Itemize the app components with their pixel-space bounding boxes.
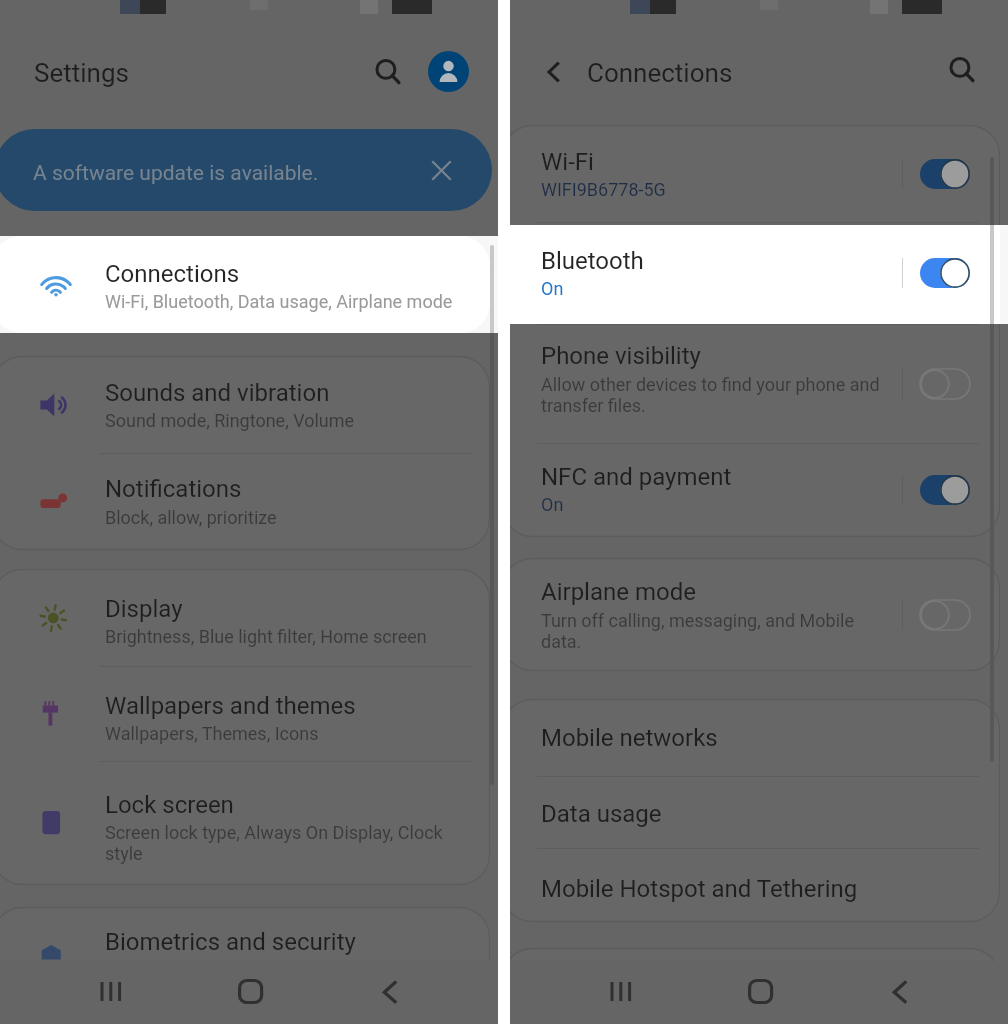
button[interactable]: Account: [428, 51, 469, 92]
button[interactable]: Airplane mode, off: [905, 558, 985, 671]
button[interactable]: Back: [355, 961, 425, 1024]
button[interactable]: A software update is available.: [0, 129, 492, 211]
staticText: Screen lock type, Always On Display, Clo…: [105, 822, 443, 864]
staticText: Turn off calling, messaging, and Mobile …: [541, 610, 854, 652]
staticText: Sound mode, Ringtone, Volume: [105, 410, 355, 431]
button[interactable]: Search: [940, 48, 984, 92]
staticText: Screen lock type, Always On Display, Clo…: [105, 822, 443, 864]
staticText: Wi-Fi: [541, 148, 594, 176]
staticText: Brightness, Blue light filter, Home scre…: [105, 626, 427, 647]
staticText: Lock screen: [105, 791, 234, 819]
staticText: Mobile Hotspot and Tethering: [541, 875, 858, 903]
staticText: Airplane mode: [541, 578, 696, 606]
staticText: WIFI9B6778-5G: [541, 179, 666, 200]
staticText: WIFI9B6778-5G: [541, 179, 666, 200]
staticText: Sounds and vibration: [105, 379, 330, 407]
staticText: On: [541, 278, 564, 299]
button[interactable]: Sounds and vibration: [0, 356, 498, 453]
staticText: Turn off calling, messaging, and Mobile …: [541, 610, 854, 652]
button[interactable]: Data usage: [510, 776, 1008, 848]
staticText: Allow other devices to find your phone a…: [541, 374, 880, 416]
button[interactable]: Phone visibility: [510, 324, 1008, 443]
button[interactable]: Connections: [582, 44, 772, 100]
staticText: NFC and payment: [541, 463, 732, 491]
staticText: Mobile Hotspot and Tethering: [541, 875, 858, 903]
staticText: On: [541, 494, 564, 515]
staticText: NFC and payment: [541, 463, 732, 491]
staticText: Bluetooth: [541, 247, 644, 275]
staticText: Display: [105, 595, 183, 623]
staticText: Phone visibility: [541, 342, 701, 370]
staticText: Sounds and vibration: [105, 379, 330, 407]
button[interactable]: Wi-Fi, on: [905, 125, 985, 222]
staticText: SIM card manager: [541, 974, 737, 1002]
button[interactable]: Settings: [20, 44, 150, 100]
staticText: Connections: [587, 58, 733, 88]
other: Back: [865, 961, 935, 1024]
button[interactable]: Recent apps: [586, 961, 656, 1024]
staticText: On: [541, 494, 564, 515]
staticText: Connections: [105, 260, 240, 288]
other: Home: [726, 961, 796, 1024]
other: Airplane mode, off: [905, 558, 985, 671]
staticText: Airplane mode: [541, 578, 696, 606]
button[interactable]: Search: [366, 50, 410, 94]
button[interactable]: Biometrics and security: [0, 907, 498, 1004]
other: NFC and payment, on: [905, 443, 985, 537]
staticText: Phone visibility: [541, 342, 701, 370]
staticText: Biometrics and security: [105, 928, 356, 956]
staticText: Brightness, Blue light filter, Home scre…: [105, 626, 427, 647]
other: Home: [216, 961, 286, 1024]
button[interactable]: Back: [865, 961, 935, 1024]
staticText: Wallpapers, Themes, Icons: [105, 723, 319, 744]
staticText: Notifications: [105, 475, 242, 503]
staticText: A software update is available.: [33, 161, 319, 186]
staticText: Settings: [34, 58, 129, 88]
other: Dismiss banner: [424, 153, 458, 187]
button[interactable]: Bluetooth, on: [905, 222, 985, 324]
other: Account: [428, 51, 469, 92]
other: Bluetooth, on: [905, 222, 985, 324]
button[interactable]: Mobile Hotspot and Tethering: [510, 848, 1008, 922]
button[interactable]: Notifications: [0, 453, 498, 550]
button[interactable]: Lock screen: [0, 761, 498, 885]
button[interactable]: Home: [216, 961, 286, 1024]
staticText: Bluetooth: [541, 247, 644, 275]
button[interactable]: Navigate back: [533, 51, 575, 93]
button[interactable]: Bluetooth: [510, 222, 1008, 324]
button[interactable]: Wi-Fi: [510, 125, 1008, 222]
staticText: Wi-Fi, Bluetooth, Data usage, Airplane m…: [105, 291, 453, 312]
staticText: Mobile networks: [541, 724, 718, 752]
staticText: A software update is available.: [33, 161, 319, 186]
button[interactable]: Dismiss banner: [424, 153, 458, 187]
button[interactable]: NFC and payment: [510, 443, 1008, 537]
staticText: Lock screen: [105, 791, 234, 819]
button[interactable]: Recent apps: [76, 961, 146, 1024]
staticText: SIM card manager: [541, 974, 737, 1002]
staticText: Block, allow, prioritize: [105, 507, 277, 528]
staticText: On: [541, 278, 564, 299]
staticText: Mobile networks: [541, 724, 718, 752]
button[interactable]: NFC and payment, on: [905, 443, 985, 537]
button[interactable]: Wallpapers and themes: [0, 666, 498, 761]
other: Recent apps: [76, 961, 146, 1024]
button[interactable]: Mobile networks: [510, 699, 1008, 776]
button[interactable]: Connections: [0, 236, 498, 333]
button[interactable]: Airplane mode: [510, 558, 1008, 671]
staticText: Block, allow, prioritize: [105, 507, 277, 528]
button[interactable]: SIM card manager: [510, 948, 1008, 1024]
staticText: Notifications: [105, 475, 242, 503]
staticText: Wallpapers and themes: [105, 692, 356, 720]
other: Back: [355, 961, 425, 1024]
staticText: Allow other devices to find your phone a…: [541, 374, 880, 416]
button[interactable]: Display: [0, 569, 498, 666]
button[interactable]: Home: [726, 961, 796, 1024]
other: Recent apps: [586, 961, 656, 1024]
staticText: Wi-Fi, Bluetooth, Data usage, Airplane m…: [105, 291, 453, 312]
staticText: Display: [105, 595, 183, 623]
other: Navigate back: [533, 51, 575, 93]
